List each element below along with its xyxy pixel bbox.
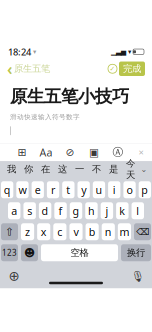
staticText: n [105, 225, 112, 239]
button[interactable]: g [70, 202, 82, 219]
staticText: u [95, 183, 102, 197]
button[interactable]: z [21, 223, 34, 240]
button[interactable]: 你 [20, 161, 37, 177]
staticText: 18:24 [8, 46, 31, 58]
button[interactable]: a [8, 202, 20, 219]
staticText: 今天 [126, 158, 135, 181]
staticText: 原生五笔小技巧 [10, 86, 129, 107]
staticText: ▣ [89, 146, 99, 158]
button[interactable]: l [132, 202, 144, 219]
staticText: ⌫ [136, 226, 149, 237]
button[interactable]: 是 [105, 161, 122, 177]
staticText: j [105, 204, 108, 218]
staticText: 滑动快速输入符号数字 [10, 113, 80, 121]
staticText: k [119, 204, 125, 218]
button[interactable]: f [54, 202, 67, 219]
staticText: o [126, 183, 132, 197]
staticText: ▁▃▅ [111, 48, 126, 56]
button[interactable]: s [23, 202, 36, 219]
staticText: ⊘ [65, 146, 74, 158]
staticText: x [41, 225, 47, 239]
button[interactable]: ‹ [7, 58, 50, 79]
staticText: ⊞ [17, 146, 26, 158]
staticText: 空格 [70, 247, 88, 258]
button[interactable]: u [93, 181, 105, 198]
staticText: Ⓐ [112, 146, 123, 159]
button[interactable]: i [108, 181, 120, 198]
button[interactable]: 我 [3, 161, 20, 177]
staticText: 123 [2, 247, 17, 258]
staticText: 你 [24, 163, 33, 175]
button[interactable]: r [47, 181, 59, 198]
staticText: i [113, 183, 116, 197]
button[interactable]: 在 [37, 161, 54, 177]
staticText: 完成 [123, 63, 141, 74]
staticText: s [27, 204, 32, 218]
button[interactable]: n [102, 223, 115, 240]
button[interactable]: 这 [54, 161, 71, 177]
button[interactable]: 换行 [121, 244, 151, 261]
staticText: 我 [7, 163, 16, 175]
button[interactable]: 今天 [122, 161, 139, 177]
button[interactable]: Close [135, 145, 147, 159]
button[interactable]: c [53, 223, 66, 240]
staticText: r [51, 183, 55, 197]
button[interactable]: Camera [87, 145, 101, 159]
button[interactable]: w [16, 181, 29, 198]
button[interactable]: b [86, 223, 99, 240]
staticText: a [11, 204, 17, 218]
button[interactable]: 123 [1, 244, 18, 261]
button[interactable]: Dictation [131, 269, 145, 283]
staticText: 这 [58, 163, 67, 175]
button[interactable]: 空格 [41, 244, 118, 261]
button[interactable]: 不 [88, 161, 105, 177]
button[interactable]: History [106, 62, 119, 75]
button[interactable]: Emoji [21, 244, 38, 261]
staticText: × [138, 146, 143, 158]
staticText: ▾ [126, 48, 133, 56]
button[interactable]: j [101, 202, 113, 219]
staticText: l [136, 204, 139, 218]
staticText: 换行 [127, 247, 145, 258]
button[interactable]: Shift [1, 223, 18, 240]
button[interactable]: o [123, 181, 136, 198]
staticText: 在 [41, 163, 50, 175]
button[interactable]: 一 [71, 161, 88, 177]
button[interactable]: Annotate [111, 145, 125, 159]
staticText: b [89, 225, 96, 239]
staticText: w [18, 183, 26, 197]
button[interactable]: y [77, 181, 90, 198]
staticText: v [73, 225, 78, 239]
staticText: ⌄ [140, 165, 147, 174]
button[interactable]: k [116, 202, 128, 219]
staticText: g [72, 204, 79, 218]
button[interactable]: Text style [39, 145, 53, 159]
button[interactable]: e [32, 181, 44, 198]
staticText: ⊕ [8, 269, 19, 284]
staticText: Aa [39, 145, 52, 159]
staticText: c [57, 225, 62, 239]
button[interactable]: Layout [15, 145, 29, 159]
button[interactable]: Switch keyboard [7, 269, 21, 283]
button[interactable]: v [69, 223, 82, 240]
button[interactable]: t [62, 181, 74, 198]
button[interactable]: h [85, 202, 98, 219]
staticText: 原生五笔 [14, 63, 50, 74]
staticText: ✓ [109, 65, 115, 73]
staticText: 是 [109, 163, 118, 175]
staticText: m [119, 225, 129, 239]
button[interactable]: Check [63, 145, 77, 159]
staticText: 一 [75, 163, 84, 175]
button[interactable]: Delete [134, 223, 151, 240]
button[interactable]: q [1, 181, 13, 198]
button[interactable]: x [37, 223, 50, 240]
staticText: ☻ [24, 247, 35, 259]
button[interactable]: p [139, 181, 151, 198]
staticText: z [25, 225, 30, 239]
button[interactable]: d [39, 202, 51, 219]
staticText: t [66, 183, 70, 197]
staticText: ⇧ [5, 226, 14, 238]
button[interactable]: m [118, 223, 131, 240]
button[interactable]: More candidates [139, 161, 149, 177]
button[interactable]: 完成 [119, 61, 145, 76]
